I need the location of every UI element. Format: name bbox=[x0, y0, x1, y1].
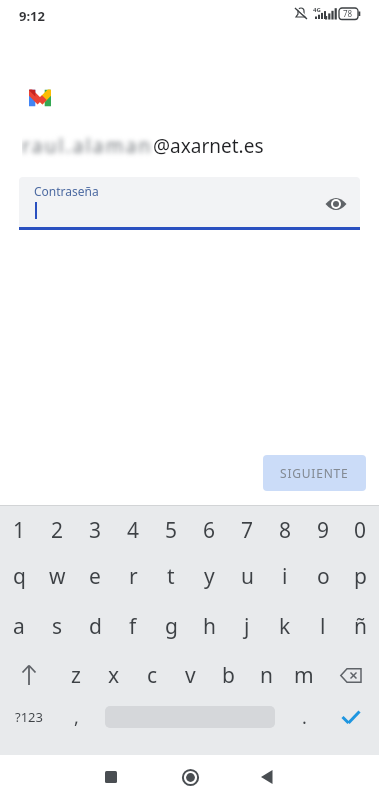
button[interactable]: z bbox=[57, 651, 95, 699]
staticText: l bbox=[320, 612, 326, 641]
button[interactable]: n bbox=[247, 651, 285, 699]
button[interactable]: h bbox=[190, 601, 228, 651]
button[interactable]: 0 bbox=[342, 507, 379, 553]
staticText: z bbox=[71, 661, 81, 690]
button[interactable]: m bbox=[285, 651, 323, 699]
button[interactable]: e bbox=[76, 551, 114, 601]
button[interactable]: k bbox=[266, 601, 304, 651]
staticText: 2 bbox=[51, 516, 64, 545]
staticText: e bbox=[89, 562, 101, 591]
staticText: 1 bbox=[13, 516, 26, 545]
button[interactable]: p bbox=[342, 551, 379, 601]
staticText: 4G bbox=[313, 6, 321, 14]
button[interactable]: f bbox=[114, 601, 152, 651]
staticText: 9 bbox=[317, 516, 330, 545]
button[interactable]: x bbox=[95, 651, 133, 699]
button[interactable]: d bbox=[76, 601, 114, 651]
button[interactable]: j bbox=[228, 601, 266, 651]
staticText: r bbox=[129, 562, 138, 591]
button[interactable]: q bbox=[0, 551, 38, 601]
button[interactable] bbox=[0, 651, 57, 699]
staticText: ?123 bbox=[15, 708, 43, 726]
staticText: @axarnet.es bbox=[153, 133, 264, 159]
staticText: x bbox=[108, 661, 120, 690]
staticText: p bbox=[354, 562, 367, 591]
button[interactable]: b bbox=[209, 651, 247, 699]
button[interactable]: 1 bbox=[0, 507, 38, 553]
button[interactable]: o bbox=[304, 551, 342, 601]
button[interactable]: 4 bbox=[114, 507, 152, 553]
staticText: y bbox=[204, 562, 215, 591]
staticText: 5 bbox=[165, 516, 178, 545]
button[interactable]: s bbox=[38, 601, 76, 651]
button[interactable]: v bbox=[171, 651, 209, 699]
button[interactable]: u bbox=[228, 551, 266, 601]
button[interactable]: 8 bbox=[266, 507, 304, 553]
staticText: g bbox=[165, 612, 178, 641]
button[interactable] bbox=[93, 759, 129, 795]
button[interactable]: g bbox=[152, 601, 190, 651]
staticText: 9:12 bbox=[19, 7, 45, 25]
button[interactable] bbox=[323, 651, 379, 699]
button[interactable]: 6 bbox=[190, 507, 228, 553]
staticText: h bbox=[203, 612, 216, 641]
staticText: q bbox=[13, 562, 26, 591]
staticText: f bbox=[129, 612, 137, 641]
staticText: SIGUIENTE bbox=[280, 465, 349, 481]
staticText: o bbox=[317, 562, 330, 591]
button[interactable]: c bbox=[133, 651, 171, 699]
staticText: 8 bbox=[279, 516, 292, 545]
button[interactable]: . bbox=[285, 695, 323, 739]
button[interactable] bbox=[323, 695, 379, 739]
staticText: s bbox=[52, 612, 63, 641]
staticText: m bbox=[294, 661, 314, 690]
staticText: raul.alaman bbox=[22, 133, 153, 159]
staticText: 0 bbox=[354, 516, 367, 545]
button[interactable]: 3 bbox=[76, 507, 114, 553]
button[interactable]: 7 bbox=[228, 507, 266, 553]
staticText: 78 bbox=[343, 8, 353, 19]
staticText: v bbox=[185, 661, 196, 690]
staticText: n bbox=[260, 661, 273, 690]
staticText: t bbox=[167, 562, 175, 591]
button[interactable]: a bbox=[0, 601, 38, 651]
button[interactable]: ñ bbox=[342, 601, 379, 651]
staticText: . bbox=[302, 705, 307, 730]
staticText: , bbox=[74, 705, 79, 730]
button[interactable]: 5 bbox=[152, 507, 190, 553]
button[interactable]: l bbox=[304, 601, 342, 651]
button[interactable]: ?123 bbox=[0, 695, 57, 739]
staticText: w bbox=[49, 562, 66, 591]
staticText: j bbox=[244, 612, 250, 641]
button[interactable]: 2 bbox=[38, 507, 76, 553]
staticText: Contraseña bbox=[34, 183, 99, 199]
staticText: ñ bbox=[354, 612, 367, 641]
button[interactable]: w bbox=[38, 551, 76, 601]
staticText: 4 bbox=[127, 516, 140, 545]
button[interactable]: y bbox=[190, 551, 228, 601]
button[interactable] bbox=[249, 759, 285, 795]
button[interactable] bbox=[172, 759, 208, 795]
button[interactable]: SIGUIENTE bbox=[263, 455, 366, 491]
staticText: u bbox=[241, 562, 254, 591]
button[interactable]: t bbox=[152, 551, 190, 601]
button[interactable]: 9 bbox=[304, 507, 342, 553]
button[interactable]: Contraseña bbox=[19, 177, 360, 227]
staticText: k bbox=[279, 612, 291, 641]
staticText: d bbox=[89, 612, 102, 641]
staticText: c bbox=[147, 661, 158, 690]
staticText: a bbox=[13, 612, 25, 641]
button[interactable]: , bbox=[57, 695, 95, 739]
staticText: b bbox=[222, 661, 235, 690]
staticText: i bbox=[282, 562, 288, 591]
staticText: 6 bbox=[203, 516, 216, 545]
staticText: 3 bbox=[89, 516, 102, 545]
button[interactable]: i bbox=[266, 551, 304, 601]
button[interactable]: r bbox=[114, 551, 152, 601]
staticText: 7 bbox=[241, 516, 254, 545]
